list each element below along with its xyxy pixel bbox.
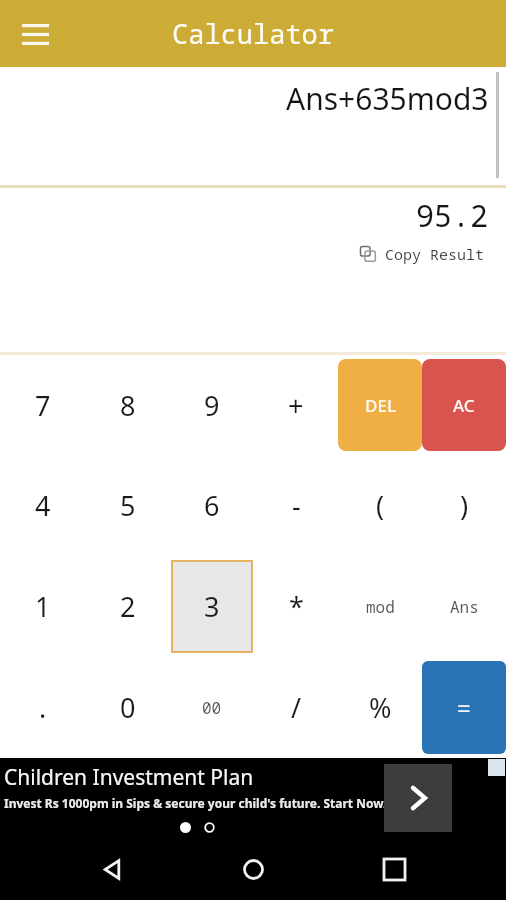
- button[interactable]: Equals: [422, 661, 506, 754]
- button[interactable]: AC: [422, 359, 506, 451]
- staticText: (: [376, 487, 385, 524]
- staticText: 6: [204, 487, 220, 524]
- staticText: 00: [202, 697, 222, 719]
- button[interactable]: 8: [85, 355, 170, 455]
- staticText: mod: [366, 596, 395, 618]
- staticText: .: [39, 689, 47, 726]
- staticText: DEL: [365, 394, 396, 417]
- staticText: Copy Result: [385, 244, 485, 264]
- staticText: Invest Rs 1000pm in Sips & secure your c…: [4, 795, 387, 811]
- button[interactable]: mod: [338, 556, 422, 657]
- staticText: 95.2: [416, 195, 488, 236]
- staticText: 0: [120, 689, 136, 726]
- button[interactable]: 0: [85, 657, 170, 758]
- staticText: 7: [35, 387, 51, 424]
- staticText: 4: [35, 487, 51, 524]
- button[interactable]: 3: [171, 560, 253, 653]
- button[interactable]: Back: [83, 840, 141, 898]
- button[interactable]: Children Investment Plan: [0, 758, 506, 838]
- button[interactable]: +: [254, 355, 338, 455]
- button[interactable]: 00: [170, 657, 254, 758]
- staticText: Children Investment Plan: [4, 763, 254, 792]
- staticText: 1: [35, 588, 51, 625]
- staticText: 8: [120, 387, 136, 424]
- button[interactable]: 4: [0, 455, 85, 556]
- staticText: -: [292, 487, 301, 524]
- staticText: Ans+635mod3: [286, 78, 489, 119]
- button[interactable]: Open navigation menu: [12, 11, 58, 57]
- button[interactable]: Recent apps: [365, 840, 423, 898]
- staticText: ): [460, 487, 469, 524]
- button[interactable]: 2: [85, 556, 170, 657]
- staticText: 9: [204, 387, 220, 424]
- button[interactable]: 7: [0, 355, 85, 455]
- button[interactable]: DEL: [338, 359, 422, 451]
- staticText: =: [457, 691, 471, 724]
- button[interactable]: (: [338, 455, 422, 556]
- button[interactable]: Home: [224, 840, 282, 898]
- button[interactable]: 9: [170, 355, 254, 455]
- staticText: AC: [453, 394, 475, 417]
- button[interactable]: 5: [85, 455, 170, 556]
- button[interactable]: %: [338, 657, 422, 758]
- staticText: 2: [120, 588, 136, 625]
- button[interactable]: Open advertisement: [384, 764, 452, 832]
- button[interactable]: .: [0, 657, 85, 758]
- staticText: +: [288, 387, 304, 424]
- staticText: /: [291, 689, 302, 726]
- button[interactable]: Ans: [422, 556, 506, 657]
- button[interactable]: 1: [0, 556, 85, 657]
- button[interactable]: ): [422, 455, 506, 556]
- staticText: Calculator: [172, 15, 334, 52]
- button[interactable]: *: [254, 556, 338, 657]
- staticText: Ans: [450, 596, 479, 618]
- button[interactable]: 6: [170, 455, 254, 556]
- button[interactable]: -: [254, 455, 338, 556]
- staticText: 5: [120, 487, 136, 524]
- staticText: 3: [204, 588, 220, 625]
- button[interactable]: Copy Result: [357, 241, 488, 267]
- button[interactable]: /: [254, 657, 338, 758]
- staticText: %: [369, 689, 392, 726]
- staticText: *: [289, 588, 304, 625]
